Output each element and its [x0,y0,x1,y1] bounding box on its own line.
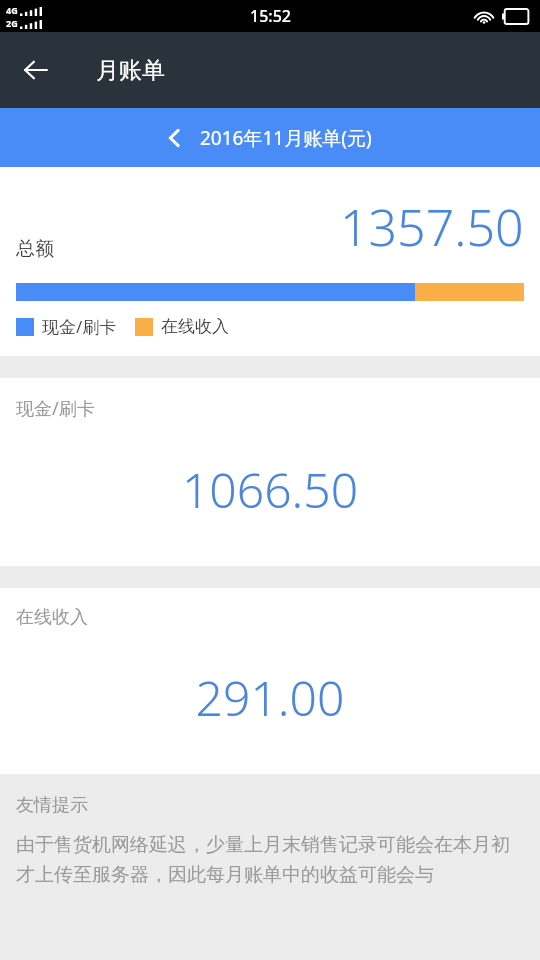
staticText: 在线收入 [16,606,88,629]
staticText: 友情提示 [16,794,88,817]
staticText: 2G [6,17,18,29]
staticText: 1357.50 [340,193,524,261]
staticText: 4G [6,4,18,16]
staticText: 1066.50 [0,457,540,522]
staticText: 由于售货机网络延迟，少量上月末销售记录可能会在本月初才上传至服务器，因此每月账单… [16,833,524,887]
staticText: 总额 [16,237,54,261]
button[interactable]: 2016年11月账单(元) [0,108,540,167]
staticText: 现金/刷卡 [16,396,95,421]
staticText: 现金/刷卡 [42,315,117,338]
staticText: 月账单 [96,56,165,85]
staticText: 在线收入 [161,316,229,337]
staticText: 15:52 [250,5,291,27]
staticText: 2016年11月账单(元) [200,125,372,151]
button[interactable]: 返回 [12,46,60,94]
staticText: 291.00 [0,665,540,730]
